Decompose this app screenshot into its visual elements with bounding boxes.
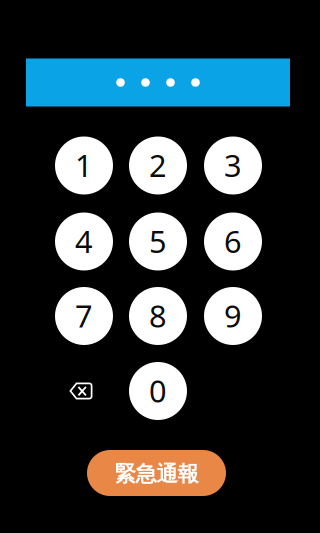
staticText: 7	[75, 295, 93, 336]
staticText: 9	[224, 295, 242, 336]
button[interactable]: 0	[129, 362, 187, 420]
button[interactable]: 9	[204, 287, 262, 345]
staticText: 1	[75, 145, 93, 185]
button[interactable]: 1	[55, 136, 113, 194]
staticText: 5	[149, 221, 167, 261]
button[interactable]: 4	[55, 212, 113, 270]
button[interactable]: 緊急通報	[87, 450, 226, 496]
staticText: 8	[149, 295, 167, 336]
button[interactable]: 3	[204, 136, 262, 194]
staticText: 2	[149, 145, 167, 185]
button[interactable]: 5	[129, 212, 187, 270]
button[interactable]: 7	[55, 287, 113, 345]
button[interactable]: Delete	[58, 375, 104, 407]
staticText: 緊急通報	[114, 461, 198, 487]
staticText: 6	[224, 221, 242, 261]
staticText: 3	[224, 145, 242, 185]
button[interactable]: 2	[129, 136, 187, 194]
staticText: 0	[149, 370, 167, 411]
button[interactable]: 8	[129, 287, 187, 345]
staticText: 4	[75, 221, 93, 261]
button[interactable]: 6	[204, 212, 262, 270]
